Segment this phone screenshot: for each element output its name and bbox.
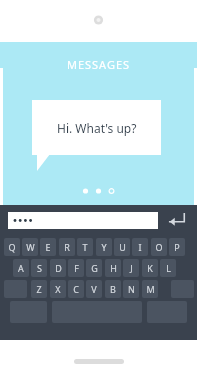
button[interactable]: S <box>31 259 47 277</box>
staticText: V <box>91 283 97 295</box>
staticText: T <box>82 241 88 253</box>
staticText: P <box>174 241 180 253</box>
button[interactable]: Hi. What's up? <box>32 100 161 155</box>
staticText: B <box>110 283 116 295</box>
button[interactable]: U <box>114 238 130 256</box>
button[interactable]: O <box>151 238 167 256</box>
staticText: D <box>55 262 62 274</box>
staticText: R <box>64 241 70 253</box>
staticText: MESSAGES <box>0 57 197 72</box>
staticText: J <box>130 262 133 274</box>
staticText: X <box>55 283 61 295</box>
button[interactable]: P <box>169 238 185 256</box>
button[interactable]: F <box>68 259 84 277</box>
button[interactable]: T <box>77 238 93 256</box>
button[interactable]: W <box>22 238 38 256</box>
button[interactable]: R <box>59 238 75 256</box>
staticText: M <box>146 283 155 295</box>
button[interactable]: J <box>123 259 139 277</box>
button[interactable]: B <box>105 280 121 298</box>
button[interactable]: G <box>86 259 102 277</box>
button[interactable]: K <box>142 259 158 277</box>
staticText: Hi. What's up? <box>57 120 137 136</box>
staticText: I <box>138 241 142 253</box>
staticText: U <box>119 241 126 253</box>
staticText: L <box>166 262 171 274</box>
staticText: E <box>45 241 51 253</box>
button[interactable]: N <box>123 280 139 298</box>
button[interactable]: C <box>68 280 84 298</box>
button[interactable]: Send <box>164 210 190 231</box>
staticText: H <box>110 262 117 274</box>
staticText: O <box>155 241 163 253</box>
button[interactable]: A <box>13 259 29 277</box>
button[interactable]: X <box>50 280 66 298</box>
button[interactable]: D <box>50 259 66 277</box>
button[interactable]: V <box>86 280 102 298</box>
staticText: Y <box>101 241 107 253</box>
button[interactable]: M <box>142 280 158 298</box>
button[interactable]: H <box>105 259 121 277</box>
staticText: K <box>147 262 153 274</box>
staticText: N <box>128 283 135 295</box>
button[interactable]: Q <box>4 238 20 256</box>
button[interactable]: I <box>132 238 148 256</box>
staticText: C <box>73 283 79 295</box>
button[interactable]: Z <box>31 280 47 298</box>
staticText: F <box>74 262 79 274</box>
staticText: W <box>26 241 35 253</box>
staticText: S <box>37 262 42 274</box>
button[interactable]: Y <box>96 238 112 256</box>
staticText: G <box>91 262 98 274</box>
staticText: Z <box>36 283 42 295</box>
staticText: A <box>18 262 24 274</box>
button[interactable]: L <box>160 259 176 277</box>
button[interactable] <box>8 212 158 229</box>
staticText: Q <box>8 241 16 253</box>
button[interactable]: E <box>40 238 56 256</box>
